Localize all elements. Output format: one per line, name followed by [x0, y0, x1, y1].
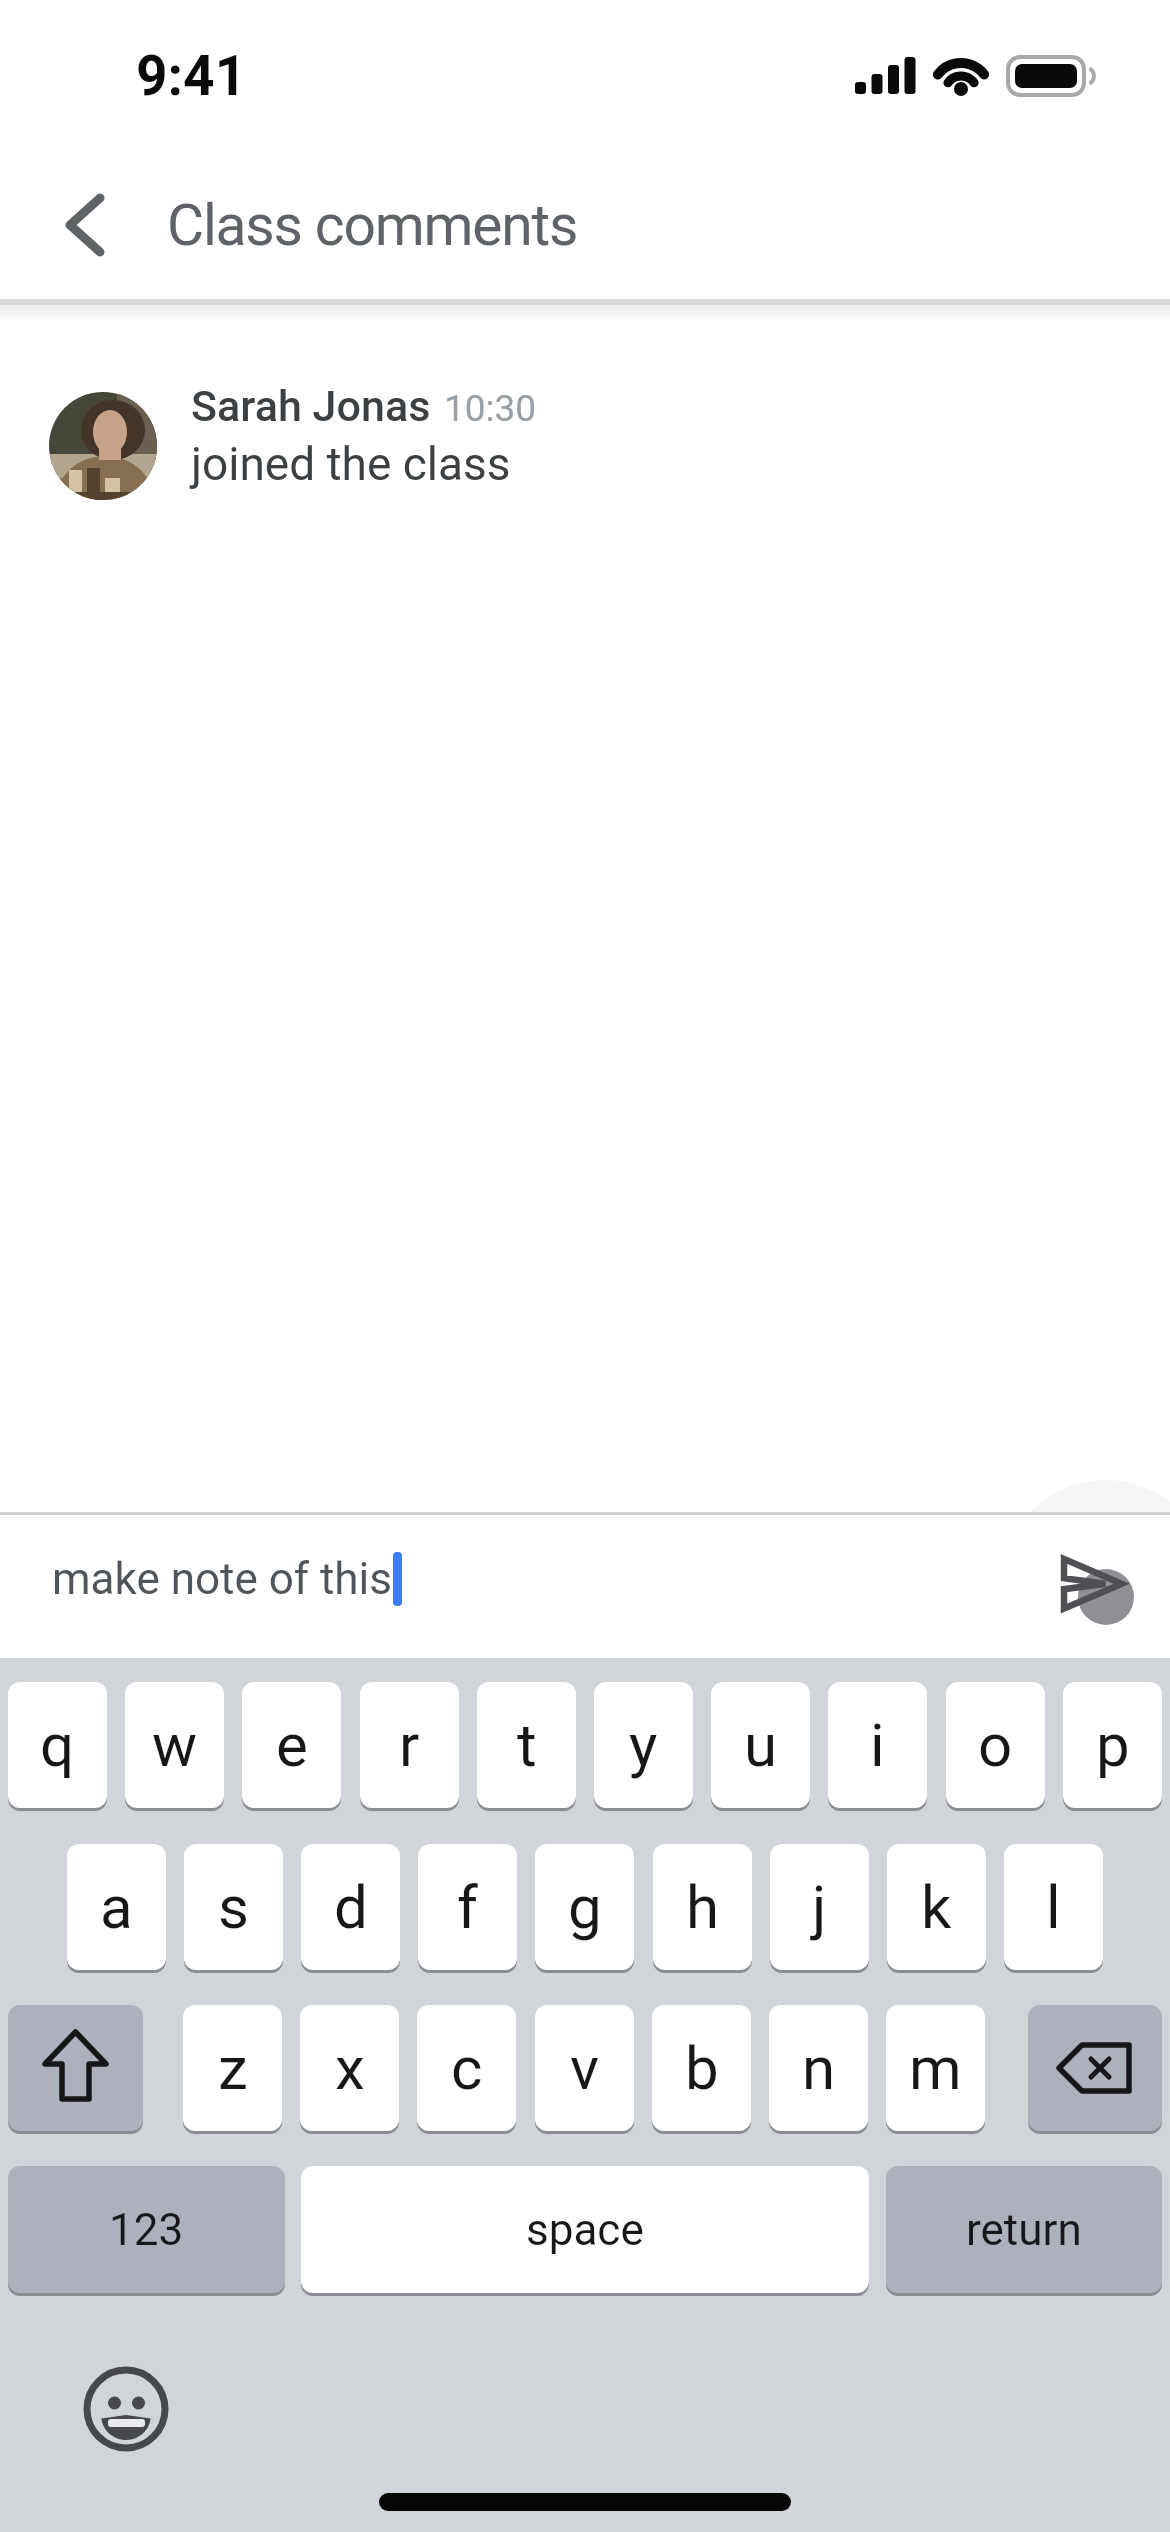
button[interactable]: space — [301, 2166, 869, 2293]
button[interactable]: f — [418, 1844, 517, 1970]
button[interactable]: s — [184, 1844, 283, 1970]
button[interactable]: j — [770, 1844, 869, 1970]
staticText: Class comments — [167, 192, 578, 259]
button[interactable]: x — [300, 2005, 399, 2131]
button[interactable] — [8, 2005, 143, 2131]
button[interactable]: return — [886, 2166, 1162, 2293]
button[interactable]: c — [417, 2005, 516, 2131]
staticText: c — [451, 2033, 483, 2103]
button[interactable]: h — [653, 1844, 752, 1970]
button[interactable]: p — [1063, 1682, 1162, 1808]
button[interactable]: n — [769, 2005, 868, 2131]
button[interactable]: l — [1004, 1844, 1103, 1970]
staticText: space — [526, 2204, 644, 2256]
staticText: f — [457, 1872, 478, 1942]
staticText: g — [568, 1872, 602, 1942]
button[interactable]: b — [652, 2005, 751, 2131]
button[interactable]: a — [67, 1844, 166, 1970]
button[interactable]: q — [8, 1682, 107, 1808]
staticText: t — [517, 1710, 537, 1780]
staticText: 9:41 — [136, 44, 247, 108]
staticText: p — [1096, 1710, 1130, 1780]
button[interactable]: t — [477, 1682, 576, 1808]
button[interactable]: d — [301, 1844, 400, 1970]
staticText: i — [870, 1710, 885, 1780]
button[interactable] — [85, 2366, 165, 2446]
staticText: a — [100, 1872, 133, 1942]
staticText: b — [685, 2033, 719, 2103]
button[interactable] — [0, 1516, 1170, 1658]
staticText: r — [399, 1710, 420, 1780]
button[interactable]: make note of this — [52, 1552, 402, 1606]
button[interactable]: w — [125, 1682, 224, 1808]
staticText: z — [218, 2033, 248, 2103]
button[interactable]: r — [360, 1682, 459, 1808]
staticText: 123 — [109, 2204, 184, 2256]
staticText: e — [276, 1710, 308, 1780]
staticText: k — [921, 1872, 952, 1942]
button[interactable] — [40, 180, 130, 270]
button[interactable] — [1064, 1555, 1148, 1639]
staticText: l — [1046, 1872, 1061, 1942]
button[interactable] — [1028, 2005, 1162, 2131]
staticText: u — [744, 1710, 778, 1780]
staticText: s — [218, 1872, 249, 1942]
staticText: joined the class — [191, 437, 511, 491]
button[interactable]: v — [535, 2005, 634, 2131]
staticText: m — [909, 2033, 962, 2103]
staticText: v — [570, 2033, 600, 2103]
staticText: d — [334, 1872, 368, 1942]
button[interactable]: m — [886, 2005, 985, 2131]
button[interactable]: e — [242, 1682, 341, 1808]
button[interactable]: g — [535, 1844, 634, 1970]
staticText: y — [629, 1710, 658, 1780]
staticText: x — [335, 2033, 365, 2103]
button[interactable]: o — [946, 1682, 1045, 1808]
button[interactable]: 123 — [8, 2166, 285, 2293]
button[interactable]: u — [711, 1682, 810, 1808]
button[interactable]: i — [828, 1682, 927, 1808]
staticText: h — [686, 1872, 720, 1942]
staticText: 10:30 — [444, 387, 537, 430]
staticText: return — [966, 2204, 1082, 2256]
staticText: n — [802, 2033, 836, 2103]
button[interactable]: z — [183, 2005, 282, 2131]
button[interactable]: y — [594, 1682, 693, 1808]
staticText: make note of this — [52, 1553, 393, 1605]
staticText: q — [40, 1710, 75, 1780]
staticText: Sarah Jonas — [191, 381, 431, 431]
button[interactable]: k — [887, 1844, 986, 1970]
staticText: w — [152, 1710, 198, 1780]
staticText: o — [978, 1710, 1013, 1780]
staticText: j — [812, 1872, 827, 1942]
